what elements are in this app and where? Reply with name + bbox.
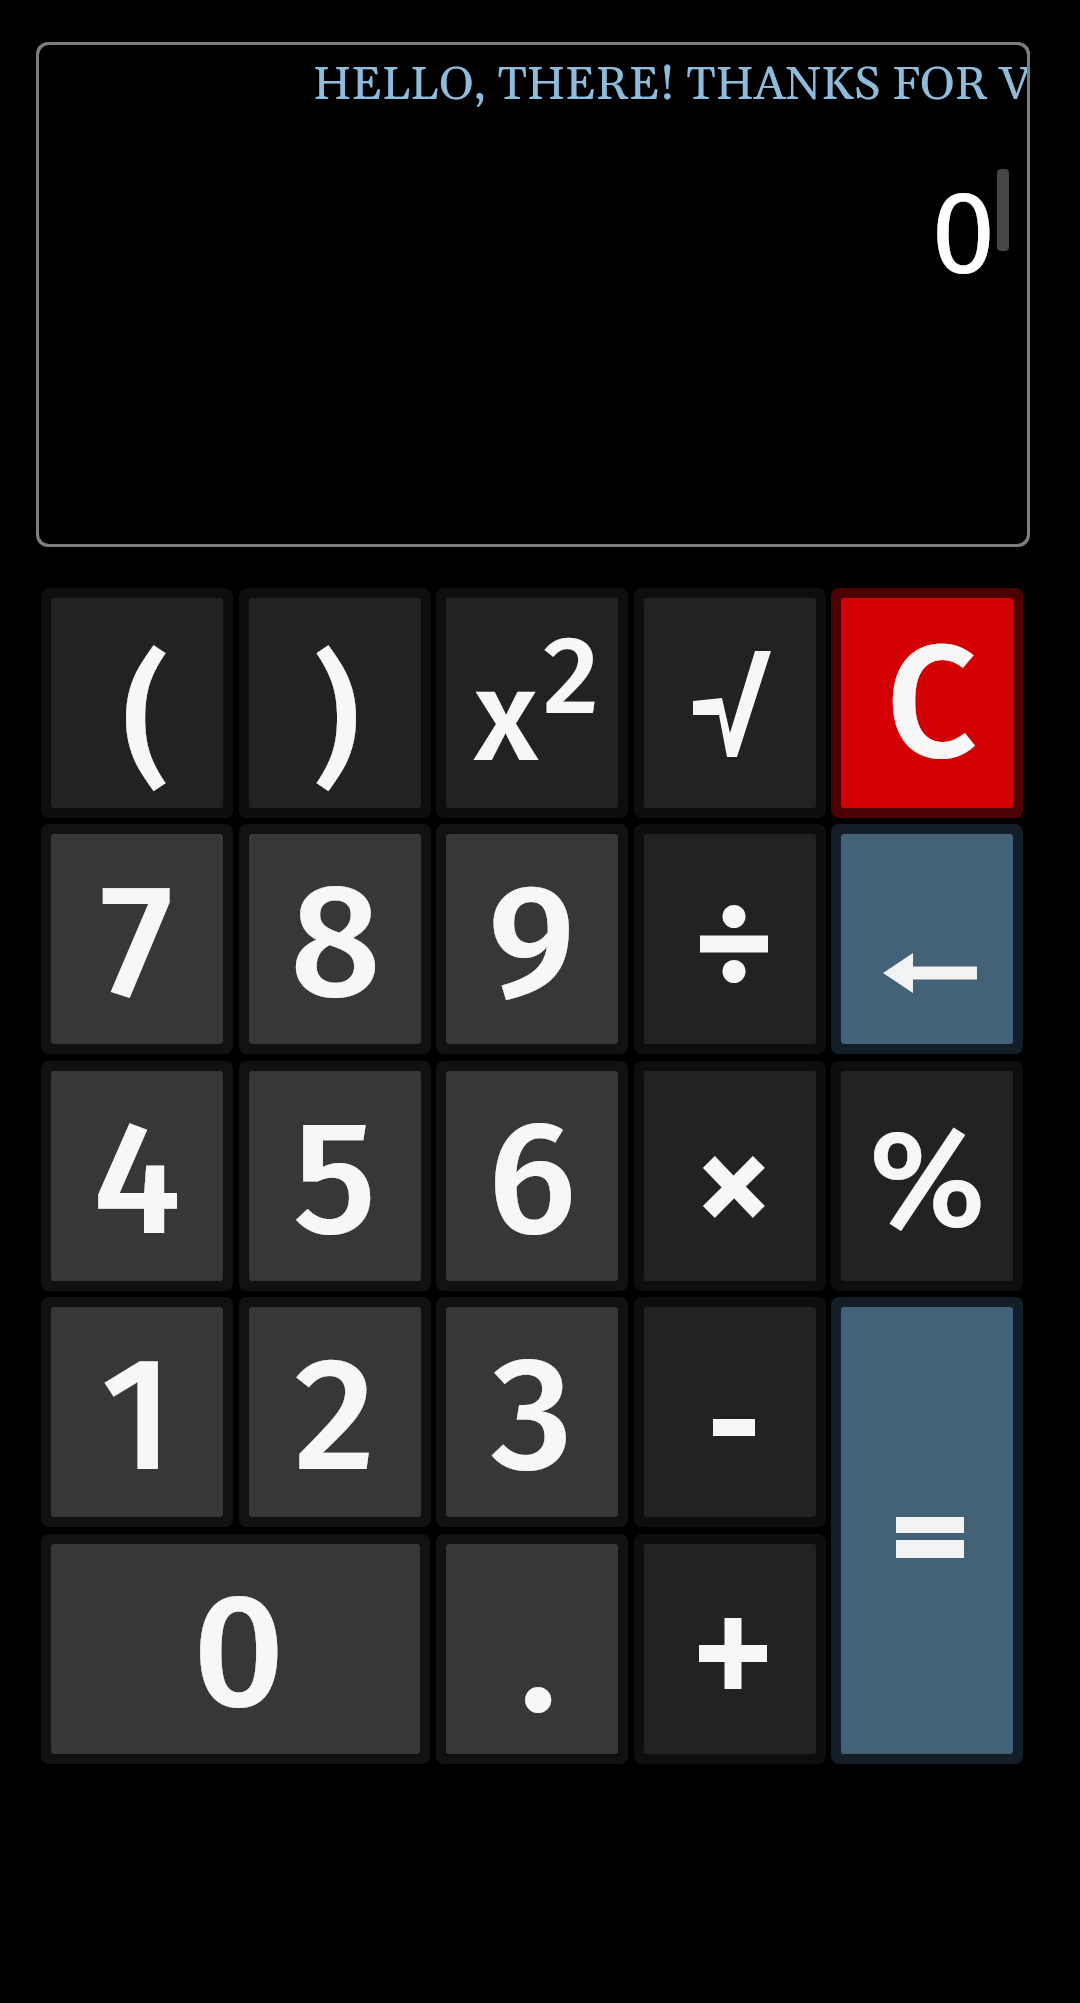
staticText: 2	[294, 1319, 376, 1511]
button[interactable]: 3	[436, 1297, 628, 1527]
staticText: 6	[488, 1083, 577, 1275]
staticText: 4	[93, 1083, 182, 1275]
button[interactable]: 6	[436, 1061, 628, 1291]
button[interactable]: 0	[41, 1534, 430, 1764]
button[interactable]: 7	[41, 824, 233, 1054]
button[interactable]	[634, 1297, 826, 1527]
staticText: 9	[488, 846, 576, 1038]
button[interactable]	[634, 588, 826, 818]
staticText: x	[474, 640, 539, 794]
staticText: C	[886, 607, 977, 799]
staticText: %	[869, 1097, 986, 1263]
button[interactable]: %	[831, 1061, 1023, 1291]
staticText: )	[313, 633, 360, 807]
button[interactable]	[831, 1297, 1023, 1764]
staticText: 0	[193, 1556, 285, 1748]
staticText: 2	[543, 610, 599, 742]
button[interactable]: C	[831, 588, 1023, 818]
staticText: .	[519, 1561, 558, 1753]
staticText: 5	[293, 1083, 377, 1275]
staticText: 1	[101, 1319, 174, 1511]
button[interactable]	[634, 824, 826, 1054]
button[interactable]: )	[239, 588, 431, 818]
button[interactable]: ×	[634, 1061, 826, 1291]
button[interactable]: 5	[239, 1061, 431, 1291]
button[interactable]: 9	[436, 824, 628, 1054]
staticText: ×	[693, 1086, 775, 1278]
button[interactable]	[634, 1534, 826, 1764]
staticText: 7	[100, 846, 174, 1038]
staticText: 0	[931, 165, 996, 304]
button[interactable]: 2	[239, 1297, 431, 1527]
button[interactable]: .	[436, 1534, 628, 1764]
staticText: 8	[290, 846, 381, 1038]
button[interactable]: (	[41, 588, 233, 818]
button[interactable]: x	[436, 588, 628, 818]
button[interactable]: 1	[41, 1297, 233, 1527]
staticText: (	[122, 633, 169, 807]
button[interactable]: 4	[41, 1061, 233, 1291]
staticText: 3	[491, 1319, 573, 1511]
button[interactable]	[831, 824, 1023, 1054]
staticText: HELLO, THERE! THANKS FOR VISITING!	[313, 55, 1027, 115]
button[interactable]: 8	[239, 824, 431, 1054]
